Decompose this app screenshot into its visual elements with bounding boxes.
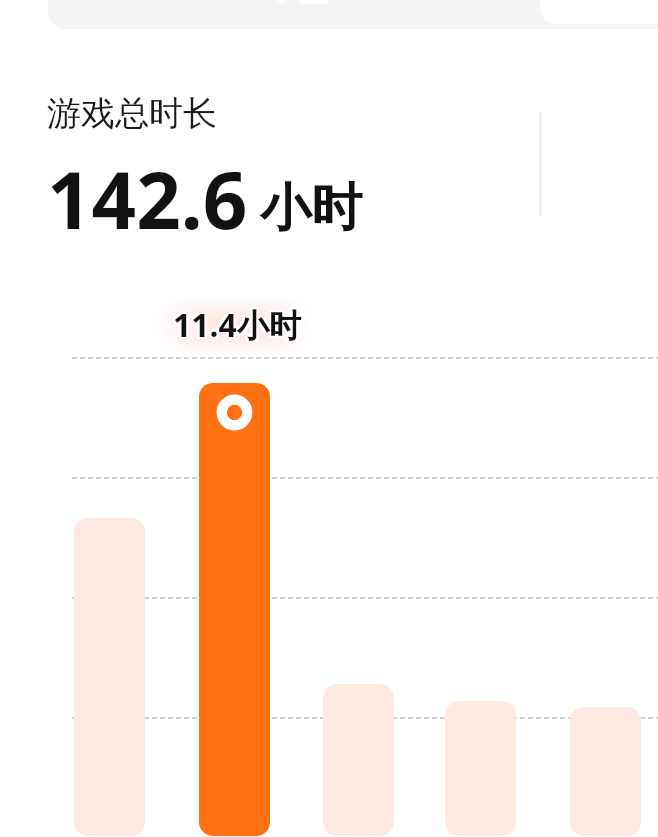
staticText: 11.4小时 [173, 302, 301, 346]
button[interactable]: Day 3 play time [323, 684, 394, 836]
staticText: 11.4小时 [175, 304, 303, 348]
staticText: 11.4小时 [174, 301, 302, 345]
staticText: 11.4小时 [174, 304, 302, 348]
staticText: 11.4小时 [171, 305, 299, 349]
staticText: 11.4小时 [175, 301, 303, 345]
staticText: 11.4小时 [172, 302, 300, 346]
staticText: 11.4小时 [174, 305, 302, 349]
staticText: 11.4小时 [171, 303, 299, 347]
staticText: 小时 [260, 176, 362, 240]
staticText: 11.4小时 [175, 302, 303, 346]
staticText: 142.6 [47, 146, 248, 252]
other: Selected day [216, 394, 253, 431]
button[interactable]: Day 5 play time [570, 707, 641, 836]
staticText: 11.4小时 [172, 304, 300, 348]
staticText: 11.4小时 [173, 303, 301, 347]
button[interactable]: Day 4 play time [445, 701, 516, 836]
staticText: 游戏总时长 [47, 92, 217, 135]
staticText: 11.4小时 [172, 301, 300, 345]
staticText: 11.4小时 [172, 305, 300, 349]
staticText: 11.4小时 [171, 301, 299, 345]
staticText: 11.4小时 [171, 304, 299, 348]
staticText: 11.4小时 [173, 301, 301, 345]
staticText: 11.4小时 [175, 303, 303, 347]
staticText: 11.4小时 [173, 305, 301, 349]
staticText: 11.4小时 [172, 303, 300, 347]
button[interactable]: Day 2 play time [199, 383, 270, 836]
staticText: 11.4小时 [175, 305, 303, 349]
staticText: 11.4小时 [173, 304, 301, 348]
staticText: 11.4小时 [174, 302, 302, 346]
staticText: 11.4小时 [174, 303, 302, 347]
button[interactable]: Previous card [48, 0, 658, 29]
staticText: 11.4小时 [171, 302, 299, 346]
